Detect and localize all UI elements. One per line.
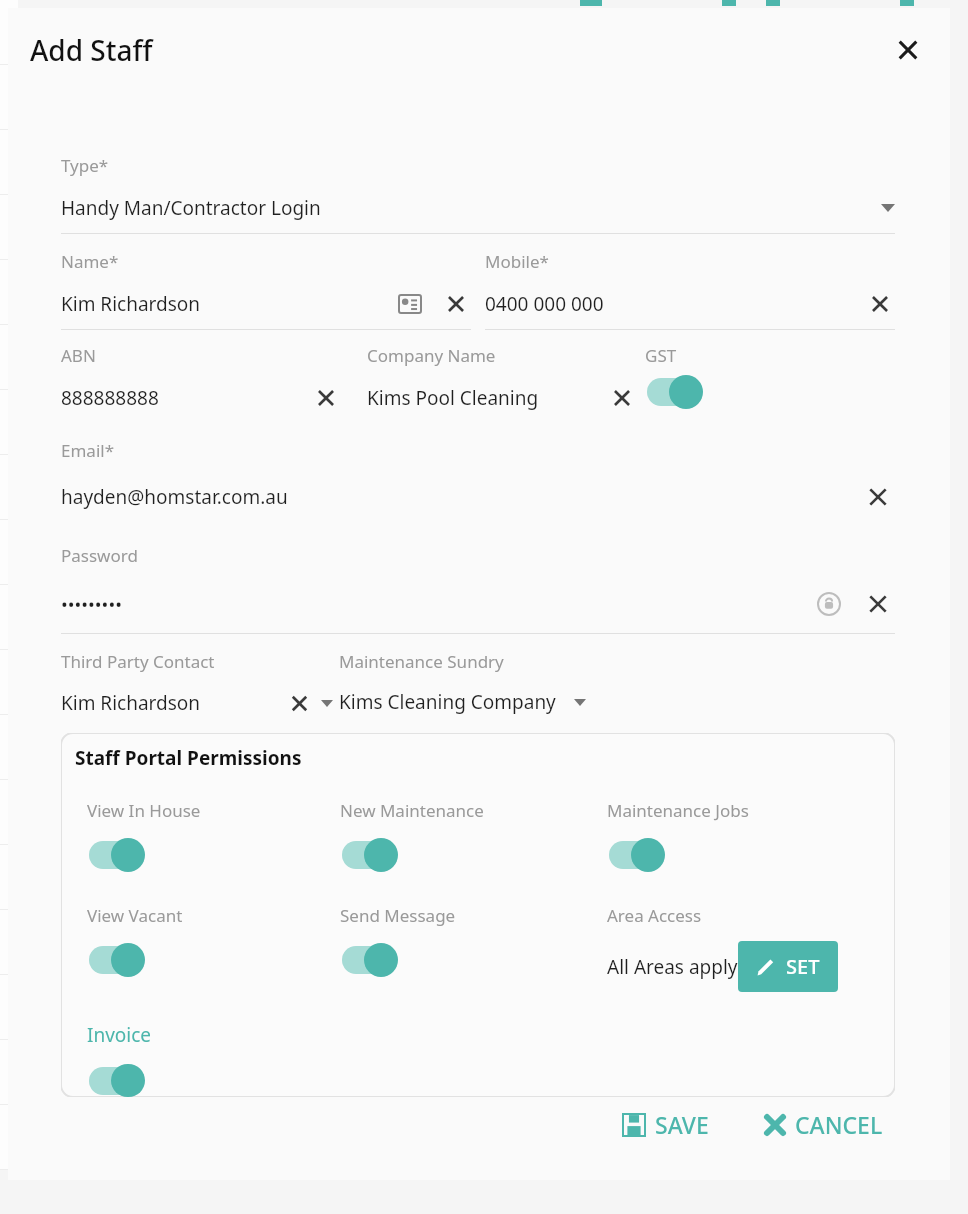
staticText: hayden@homstar.com.au xyxy=(61,484,288,510)
button[interactable]: Handy Man/Contractor Login xyxy=(61,195,895,221)
staticText: Email* xyxy=(61,439,115,462)
staticText: Invoice xyxy=(87,1022,152,1048)
button[interactable]: Clear ABN xyxy=(311,383,341,413)
staticText: GST xyxy=(645,344,677,367)
button[interactable] xyxy=(87,943,145,977)
button[interactable]: SET xyxy=(738,941,838,992)
staticText: Maintenance Jobs xyxy=(607,799,749,822)
staticText: Staff Portal Permissions xyxy=(75,745,302,771)
staticText: Kim Richardson xyxy=(61,690,201,716)
staticText: 0400 000 000 xyxy=(485,291,604,317)
button[interactable] xyxy=(87,1064,145,1097)
button[interactable]: Clear email xyxy=(861,480,895,514)
button[interactable]: Clear name xyxy=(441,289,471,319)
staticText: Name* xyxy=(61,250,119,273)
button[interactable]: Clear contact xyxy=(285,689,313,717)
staticText: Kims Cleaning Company xyxy=(339,689,556,715)
button[interactable]: Reset password xyxy=(813,588,845,620)
staticText: Kim Richardson xyxy=(61,291,201,317)
staticText: SET xyxy=(786,953,820,980)
staticText: 888888888 xyxy=(61,385,159,411)
staticText: ••••••••• xyxy=(61,592,122,617)
button[interactable] xyxy=(340,838,398,872)
button[interactable]: Contacts xyxy=(395,289,425,319)
staticText: Area Access xyxy=(607,904,702,927)
button[interactable]: SAVE xyxy=(611,1099,721,1150)
staticText: New Maintenance xyxy=(340,799,484,822)
staticText: Company Name xyxy=(367,344,496,367)
staticText: Mobile* xyxy=(485,250,549,273)
button[interactable] xyxy=(340,943,398,977)
staticText: Third Party Contact xyxy=(61,650,215,673)
button[interactable]: Clear mobile xyxy=(865,289,895,319)
staticText: Add Staff xyxy=(30,31,153,69)
staticText: Maintenance Sundry xyxy=(339,650,504,673)
button[interactable] xyxy=(607,838,665,872)
staticText: Kims Pool Cleaning xyxy=(367,385,539,411)
button[interactable]: Clear password xyxy=(861,587,895,621)
button[interactable] xyxy=(87,838,145,872)
staticText: Send Message xyxy=(340,904,456,927)
button[interactable]: Clear company xyxy=(607,383,637,413)
staticText: View In House xyxy=(87,799,201,822)
staticText: CANCEL xyxy=(795,1109,883,1140)
staticText: View Vacant xyxy=(87,904,183,927)
staticText: ABN xyxy=(61,344,96,367)
staticText: Handy Man/Contractor Login xyxy=(61,195,321,221)
staticText: All Areas apply xyxy=(607,954,738,980)
button[interactable] xyxy=(645,375,703,409)
staticText: Password xyxy=(61,544,138,567)
staticText: Type* xyxy=(61,154,109,177)
staticText: SAVE xyxy=(655,1109,709,1140)
button[interactable]: Close xyxy=(886,28,930,72)
button[interactable]: CANCEL xyxy=(753,1099,895,1150)
